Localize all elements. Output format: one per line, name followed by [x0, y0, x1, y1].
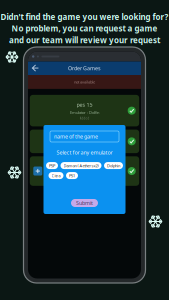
button[interactable]: Submit	[71, 199, 98, 207]
staticText: Select for any emulator	[56, 149, 112, 156]
staticText: Emulator : Dolphin	[68, 170, 100, 175]
staticText: Didn't find the game you were looking fo…	[0, 11, 168, 22]
staticText: Order Games	[68, 65, 101, 72]
staticText: not available	[74, 79, 95, 85]
staticText: PS1	[69, 173, 75, 178]
staticText: PSP	[49, 163, 55, 168]
staticText: pes 15	[76, 101, 92, 108]
button[interactable]: Back	[31, 64, 40, 73]
staticText: Citra	[51, 173, 60, 178]
staticText: Added	[79, 117, 89, 120]
staticText: No problem, you can request a game	[11, 23, 157, 34]
staticText: Damon ( Aethersx2)	[63, 163, 98, 168]
button[interactable]: pes 15	[30, 95, 139, 126]
button[interactable]: PS1	[66, 172, 78, 179]
staticText: and our team will review your request	[9, 35, 160, 45]
button[interactable]: driver san francisco	[30, 156, 139, 186]
button[interactable]: Dolphin	[104, 162, 123, 169]
staticText: driver san francisco	[60, 162, 108, 169]
button[interactable]: Damon ( Aethersx2)	[60, 162, 101, 169]
button[interactable]: Citra	[48, 172, 63, 179]
button[interactable]: Emulator : Dolphin	[30, 130, 139, 153]
button[interactable]: name of the game	[50, 131, 119, 142]
staticText: Submit	[76, 199, 93, 207]
staticText: Dolphin	[107, 163, 120, 168]
staticText: name of the game	[54, 133, 98, 140]
staticText: Emulator : Dolfin	[70, 110, 99, 115]
button[interactable]: PSP	[46, 162, 58, 169]
staticText: Emulator : Dolphin	[68, 136, 100, 141]
